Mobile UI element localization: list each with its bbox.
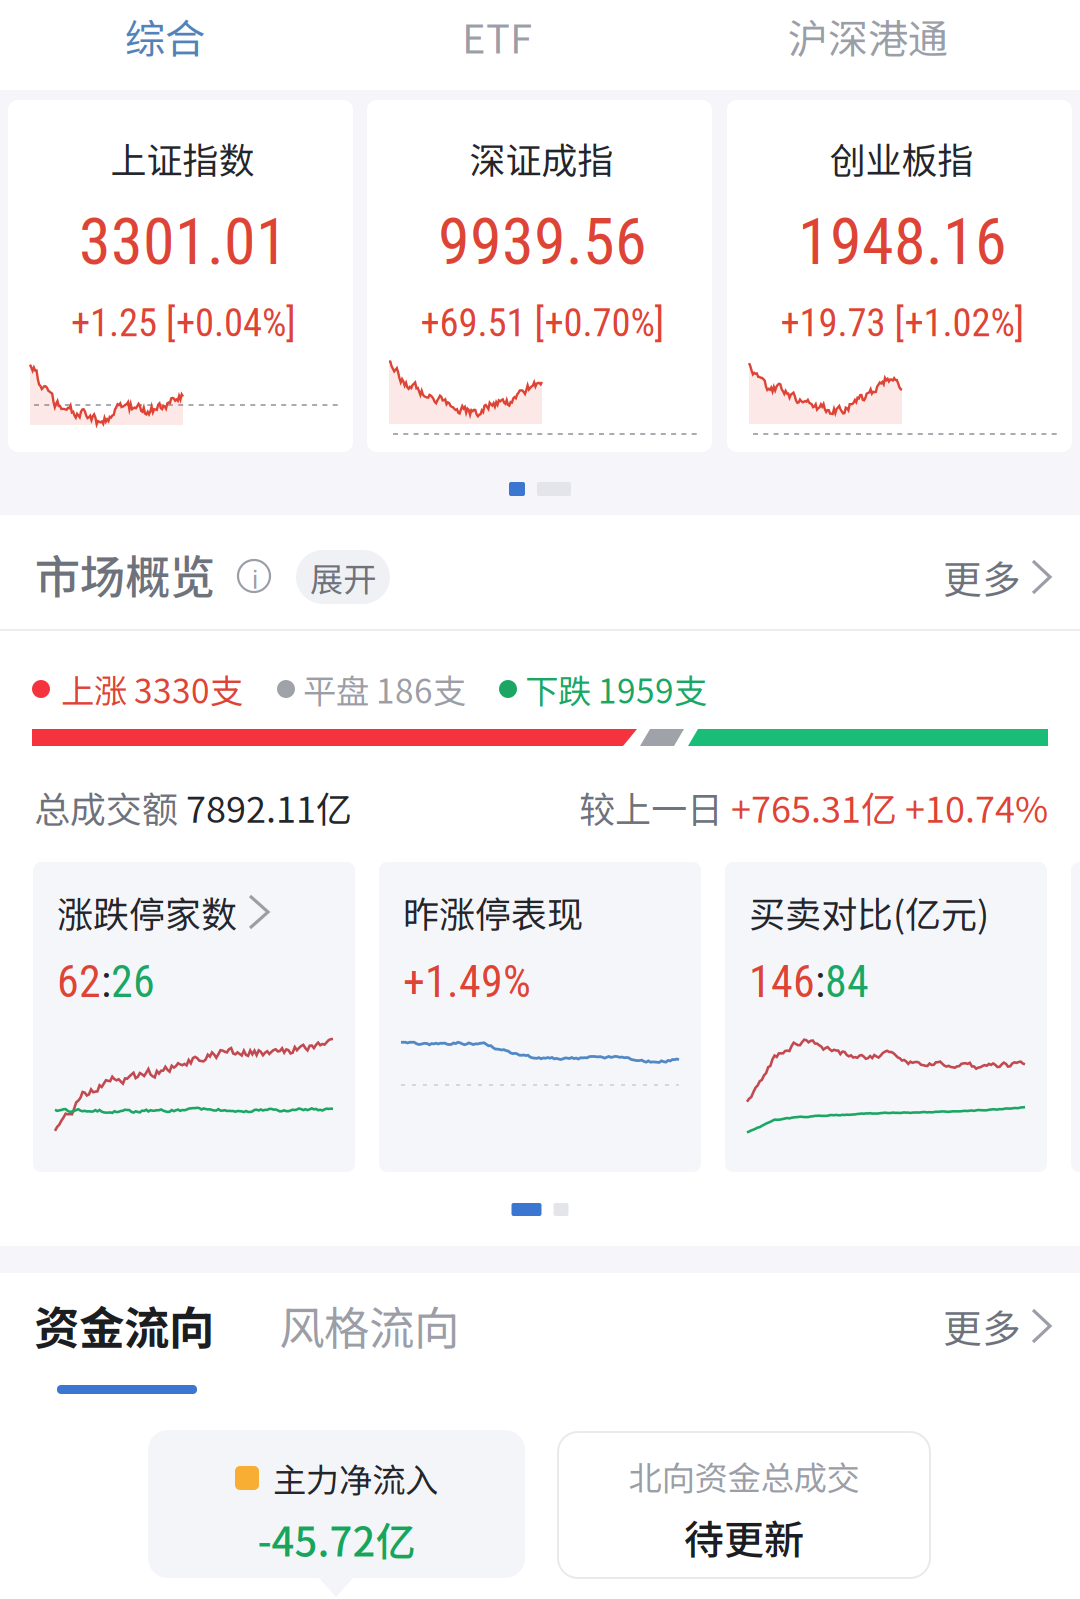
staticText: +69.51 [+0.70%] <box>420 300 664 346</box>
staticText: -45.72亿 <box>257 1510 415 1568</box>
staticText: 9939.56 <box>438 204 647 279</box>
button[interactable]: 资金流向 <box>34 1298 224 1352</box>
staticText: 待更新 <box>684 1508 804 1566</box>
staticText: i <box>252 565 258 595</box>
staticText: +10.74% <box>905 781 1048 833</box>
button[interactable]: 沪深港通 <box>748 0 988 81</box>
button[interactable]: 上证指数 <box>8 100 353 452</box>
staticText: ETF <box>462 7 532 65</box>
staticText: 1948.16 <box>798 204 1007 279</box>
button[interactable]: 风格流向 <box>279 1298 469 1352</box>
staticText: 26 <box>111 956 155 1008</box>
button[interactable]: 综合 <box>45 0 285 81</box>
button[interactable]: 主力净流入 <box>148 1430 525 1598</box>
staticText: 资金流向 <box>34 1292 214 1358</box>
staticText: 沪深港通 <box>788 7 948 65</box>
staticText: 上证指数 <box>110 132 254 184</box>
button[interactable]: 昨涨停表现 <box>379 862 701 1172</box>
button[interactable]: 展开 <box>296 550 390 604</box>
staticText: 3301.01 <box>79 204 288 279</box>
staticText: 展开 <box>310 553 376 601</box>
button[interactable]: 深证成指 <box>367 100 712 452</box>
staticText: 风格流向 <box>279 1292 459 1358</box>
staticText: 总成交额 <box>34 781 186 833</box>
button[interactable]: 更多 <box>890 549 1050 605</box>
staticText: 62 <box>57 956 101 1008</box>
staticText: 7892.11亿 <box>186 781 352 833</box>
staticText: 综合 <box>125 7 205 65</box>
staticText: 创业板指 <box>829 132 973 184</box>
staticText: 北向资金总成交 <box>628 1452 859 1500</box>
staticText: +765.31亿 <box>731 781 905 833</box>
staticText: 主力净流入 <box>273 1454 438 1502</box>
staticText: 平盘 186支 <box>303 665 466 713</box>
staticText: +1.49% <box>403 956 531 1008</box>
staticText: 更多 <box>943 1298 1021 1354</box>
staticText: 买卖对比(亿元) <box>749 886 989 938</box>
button[interactable]: ETF <box>377 0 617 81</box>
button[interactable]: 涨跌停家数 <box>33 862 355 1172</box>
staticText: : <box>101 956 111 1008</box>
staticText: +1.25 [+0.04%] <box>71 300 296 346</box>
staticText: 更多 <box>943 549 1021 605</box>
staticText: 84 <box>825 956 869 1008</box>
button[interactable]: 创业板指 <box>727 100 1072 452</box>
button[interactable]: 北向资金总成交 <box>558 1432 930 1578</box>
staticText: : <box>815 956 825 1008</box>
staticText: 较上一日 <box>579 781 731 833</box>
staticText: 146 <box>749 956 815 1008</box>
staticText: 深证成指 <box>469 132 613 184</box>
button[interactable]: 更多 <box>890 1298 1050 1354</box>
staticText: 上涨 3330支 <box>61 665 243 713</box>
staticText: 市场概览 <box>35 541 215 607</box>
staticText: +19.73 [+1.02%] <box>780 300 1024 346</box>
staticText: 涨跌停家数 <box>57 886 237 938</box>
staticText: 下跌 1959支 <box>525 665 707 713</box>
button[interactable]: 买卖对比(亿元) <box>725 862 1047 1172</box>
staticText: 昨涨停表现 <box>403 886 583 938</box>
